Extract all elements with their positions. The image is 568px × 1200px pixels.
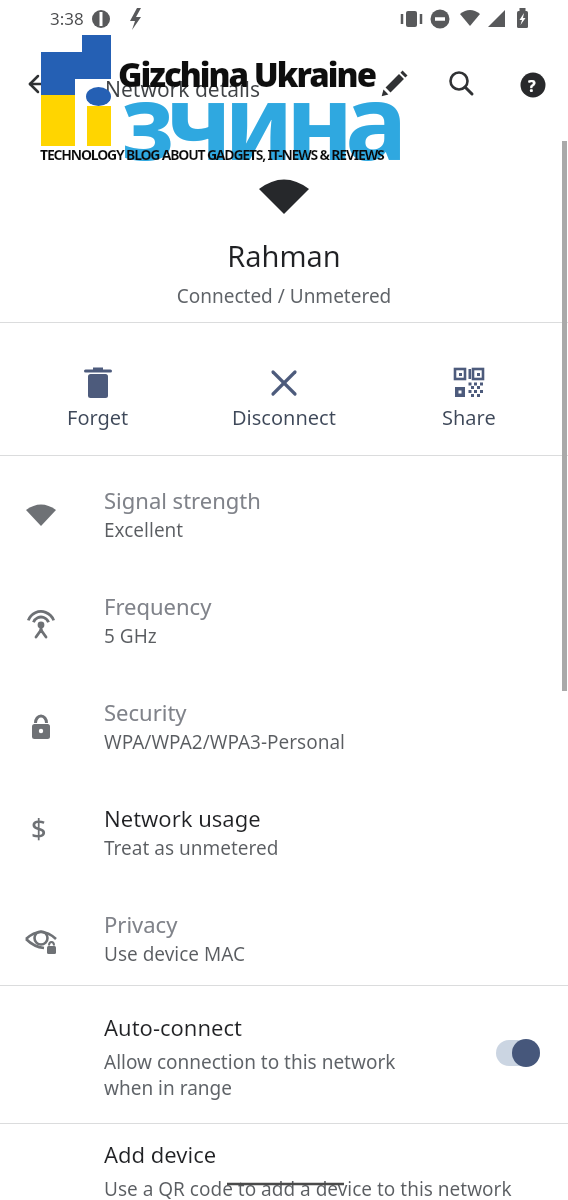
button[interactable]: Share — [399, 356, 539, 441]
staticText: зчина — [121, 49, 399, 191]
staticText: Share — [442, 404, 496, 431]
button[interactable] — [14, 60, 62, 108]
button[interactable]: ? — [509, 61, 557, 109]
staticText: Add device — [104, 1139, 217, 1169]
button[interactable]: Disconnect — [214, 356, 354, 441]
staticText: Privacy — [104, 909, 178, 939]
button[interactable]: Frequency — [0, 586, 560, 690]
button[interactable] — [369, 61, 417, 109]
staticText: 5 GHz — [104, 623, 157, 649]
staticText: Treat as unmetered — [104, 835, 279, 861]
staticText: Excellent — [104, 517, 184, 543]
button[interactable]: Add device — [0, 1127, 568, 1200]
button[interactable] — [437, 60, 485, 108]
staticText: 3:38 — [50, 7, 84, 30]
button[interactable]: Network usage — [0, 798, 560, 902]
staticText: Allow connection to this network when in… — [104, 1049, 396, 1100]
staticText: Network usage — [104, 803, 261, 833]
button[interactable]: Forget — [28, 356, 168, 441]
staticText: Signal strength — [104, 485, 261, 515]
staticText: Use a QR code to add a device to this ne… — [104, 1176, 512, 1200]
staticText: ? — [528, 75, 536, 97]
button[interactable]: Security — [0, 692, 560, 796]
staticText: TECHNOLOGY BLOG ABOUT GADGETS, IT-NEWS &… — [40, 145, 384, 164]
button[interactable]: Auto-connect — [0, 995, 568, 1121]
staticText: Gizchina Ukraine — [118, 52, 376, 97]
button[interactable]: Privacy — [0, 904, 560, 1008]
staticText: Frequency — [104, 591, 212, 621]
button[interactable]: Signal strength — [0, 480, 560, 584]
staticText: $ — [31, 810, 47, 847]
staticText: Auto-connect — [104, 1012, 242, 1042]
staticText: Forget — [67, 404, 129, 431]
staticText: WPA/WPA2/WPA3-Personal — [104, 729, 346, 755]
staticText: Network details — [105, 75, 260, 104]
staticText: Disconnect — [232, 404, 336, 431]
staticText: Security — [104, 697, 187, 727]
staticText: Connected / Unmetered — [0, 283, 568, 309]
staticText: Use device MAC — [104, 941, 245, 967]
staticText: Rahman — [0, 236, 568, 275]
